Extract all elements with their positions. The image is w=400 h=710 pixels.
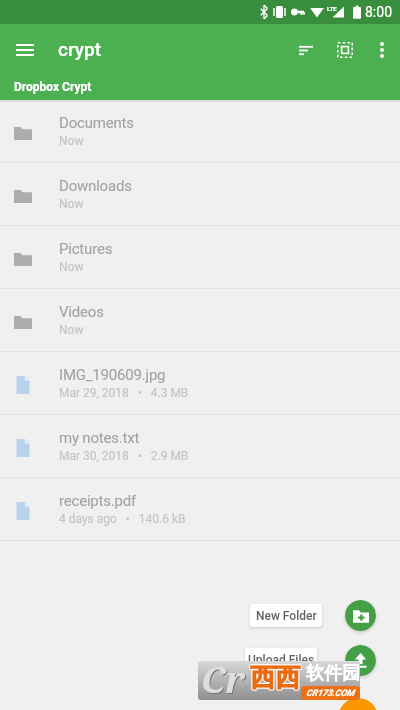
staticText: Mar 29, 2018 • 4.3 MB xyxy=(59,386,189,400)
staticText: 4 days ago • 140.6 kB xyxy=(59,512,186,526)
staticText: 软件园 xyxy=(306,662,360,685)
staticText: Pictures xyxy=(59,240,113,258)
button[interactable]: Downloads xyxy=(0,163,400,226)
staticText: IMG_190609.jpg xyxy=(59,366,166,384)
button[interactable] xyxy=(287,31,325,69)
button[interactable] xyxy=(338,698,378,710)
staticText: New Folder xyxy=(256,609,317,623)
staticText: 西西 xyxy=(250,662,300,693)
button[interactable]: receipts.pdf xyxy=(0,478,400,541)
staticText: crypt xyxy=(58,38,102,60)
staticText: Cr xyxy=(202,656,246,695)
button[interactable] xyxy=(325,30,364,69)
staticText: my notes.txt xyxy=(59,429,140,447)
staticText: 西西 xyxy=(250,663,300,694)
button[interactable] xyxy=(8,33,42,67)
staticText: 8:00 xyxy=(365,4,392,20)
button[interactable]: Pictures xyxy=(0,226,400,289)
staticText: Documents xyxy=(59,114,134,132)
button[interactable]: Documents xyxy=(0,100,400,163)
staticText: Mar 30, 2018 • 2.9 MB xyxy=(59,449,189,463)
staticText: Upload Files xyxy=(248,653,315,667)
staticText: Dropbox Crypt xyxy=(14,80,92,94)
staticText: Cr xyxy=(201,655,245,694)
staticText: 西西 xyxy=(249,662,299,693)
staticText: 西西 xyxy=(250,661,300,692)
staticText: Downloads xyxy=(59,177,132,195)
button[interactable]: Upload Files xyxy=(245,648,317,671)
staticText: Now xyxy=(59,134,84,148)
staticText: Videos xyxy=(59,303,104,321)
button[interactable] xyxy=(364,32,400,68)
staticText: Now xyxy=(59,323,84,337)
staticText: 西西 xyxy=(251,662,301,693)
staticText: Now xyxy=(59,260,84,274)
button[interactable]: my notes.txt xyxy=(0,415,400,478)
button[interactable] xyxy=(345,600,376,631)
button[interactable]: New Folder xyxy=(250,604,322,627)
staticText: CR173.COM xyxy=(306,688,355,699)
staticText: LTE xyxy=(327,5,337,12)
staticText: Now xyxy=(59,197,84,211)
button[interactable] xyxy=(345,645,376,676)
button[interactable]: IMG_190609.jpg xyxy=(0,352,400,415)
button[interactable]: Videos xyxy=(0,289,400,352)
staticText: receipts.pdf xyxy=(59,492,137,510)
